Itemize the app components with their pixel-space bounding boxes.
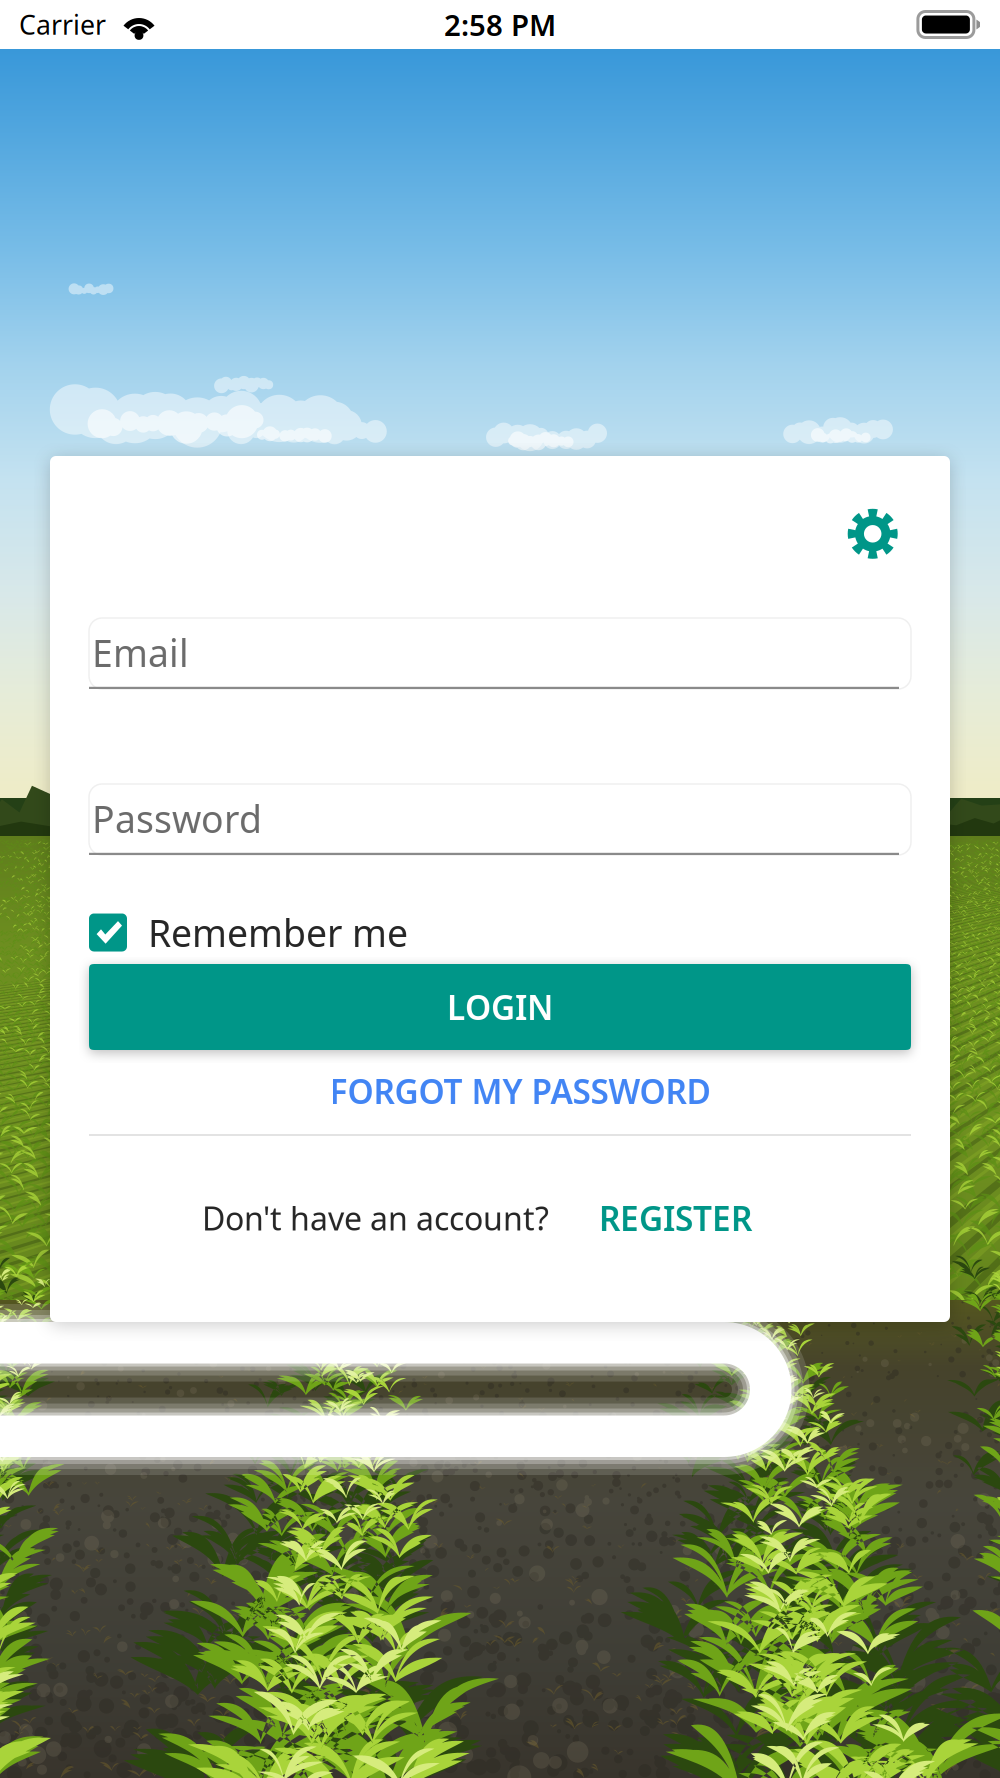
button[interactable]: FORGOT MY PASSWORD [119,1059,921,1123]
staticText: FORGOT MY PASSWORD [329,1069,710,1113]
staticText: REGISTER [599,1196,752,1240]
staticText: Carrier [19,7,106,42]
staticText: LOGIN [447,985,553,1029]
button[interactable]: REGISTER [549,1182,772,1254]
staticText: Email [92,628,189,677]
staticText: Password [92,794,262,843]
staticText: 2:58 PM [444,5,556,44]
staticText: Don't have an account? [202,1197,549,1239]
button[interactable]: Remember me [89,907,509,957]
button[interactable]: Settings [834,495,912,573]
button[interactable]: LOGIN [89,964,911,1050]
staticText: Remember me [148,908,408,957]
